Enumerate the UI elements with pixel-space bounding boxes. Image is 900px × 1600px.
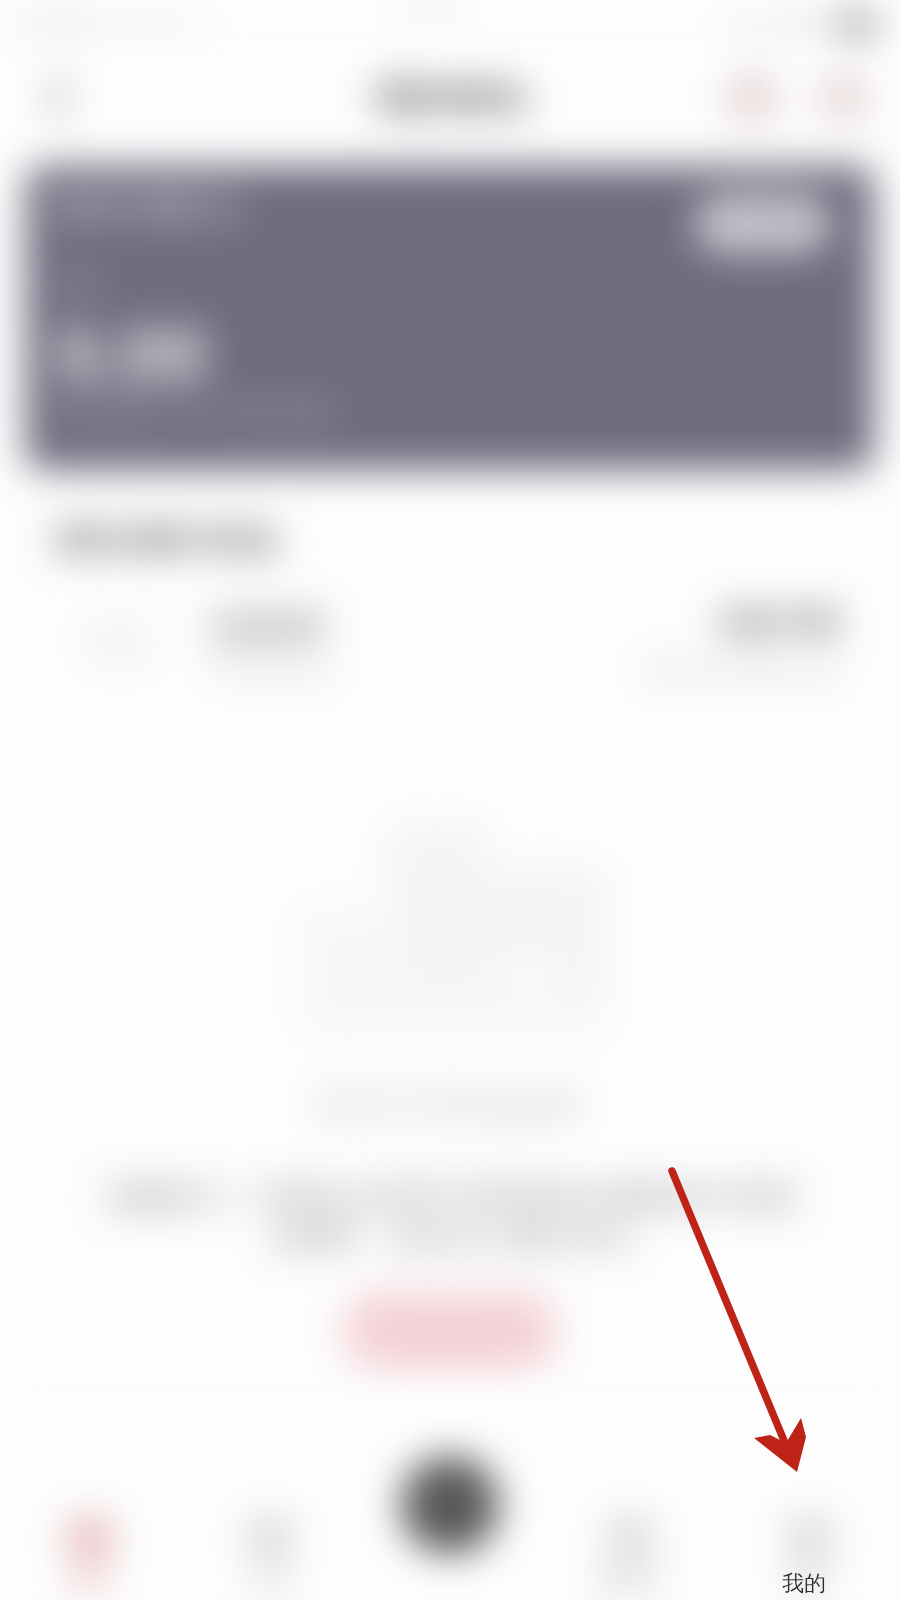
button[interactable]: 分类 (180, 1512, 360, 1600)
staticText: 冻结金额 0.00 元 累计收益 (52, 394, 335, 427)
button[interactable]: Back (12, 52, 104, 144)
staticText: 我的 (788, 1566, 832, 1594)
staticText: 0.00 (56, 300, 208, 404)
staticText: 我的钱包 (374, 74, 526, 122)
button[interactable]: Customer service (706, 52, 798, 144)
button[interactable]: 交易明细 (696, 196, 830, 252)
staticText: 交易明细 (715, 209, 811, 239)
button[interactable]: Scan (401, 1456, 499, 1554)
staticText: 购物车 (597, 1566, 663, 1594)
staticText: 我的余额(元) (52, 182, 243, 228)
staticText: 我的优惠与权益 (54, 520, 278, 560)
button[interactable]: 我的 (720, 1512, 900, 1600)
staticText: 我的 (782, 1570, 826, 1598)
button[interactable]: 我的余额(元) (26, 166, 874, 470)
button[interactable]: 购物车 (540, 1512, 720, 1600)
staticText: 首页 (68, 1566, 112, 1594)
button[interactable]: 立即开通 (342, 1292, 558, 1370)
staticText: 优惠券 (208, 602, 328, 652)
staticText: 温馨提示：开通会员后即可享受更多专属权益与优惠 优惠券，包括无门槛红包等 (105, 1178, 795, 1256)
staticText: 0张可用 (718, 599, 840, 645)
button[interactable]: 首页 (0, 1512, 180, 1600)
button[interactable]: 优惠券 (0, 570, 900, 696)
button[interactable]: More options (798, 52, 890, 144)
staticText: 可用优惠券张数 (208, 660, 334, 683)
